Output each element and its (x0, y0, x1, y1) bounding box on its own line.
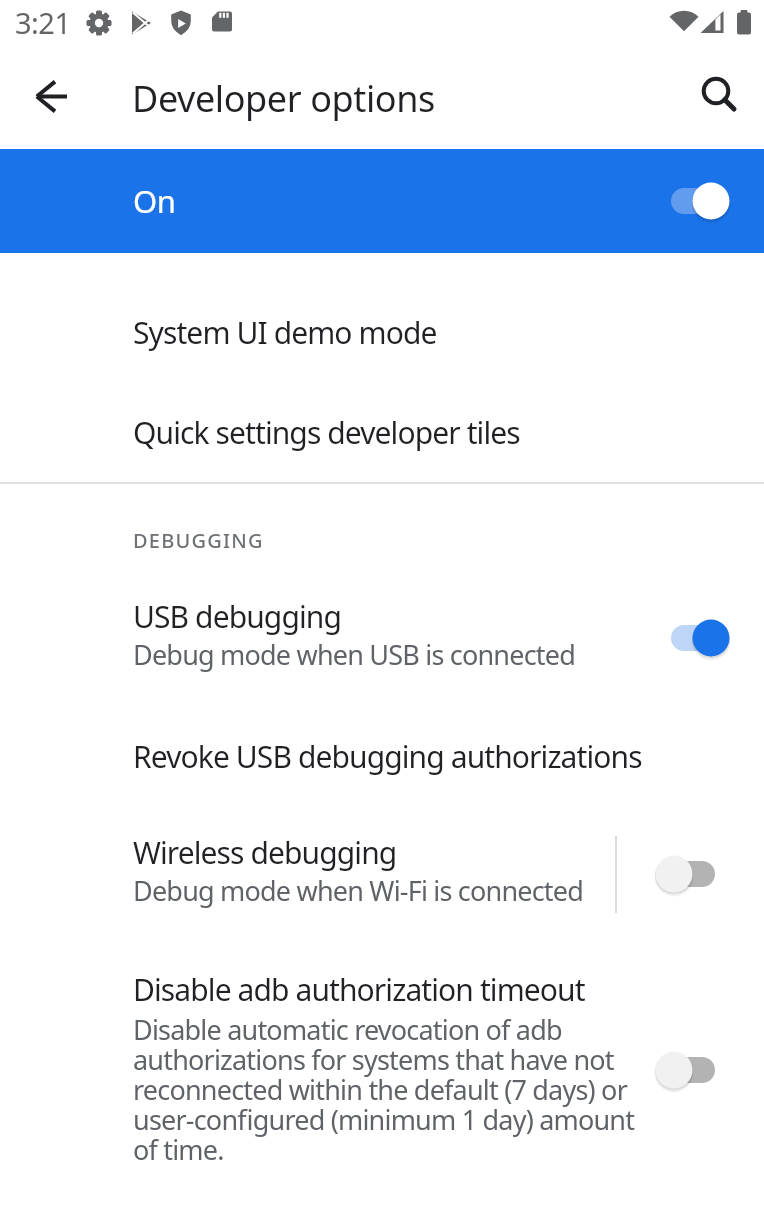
button[interactable] (32, 76, 72, 116)
button[interactable]: USB debugging (0, 578, 764, 698)
button[interactable]: On (0, 149, 764, 253)
staticText: Disable adb authorization timeout (133, 969, 585, 1009)
staticText: 3:21 (15, 3, 71, 42)
staticText: DEBUGGING (133, 527, 264, 554)
staticText: Debug mode when Wi-Fi is connected (133, 872, 584, 908)
staticText: USB debugging (133, 596, 341, 636)
button[interactable] (655, 619, 730, 657)
staticText: Quick settings developer tiles (133, 412, 520, 453)
staticText: Debug mode when USB is connected (133, 636, 576, 672)
button[interactable] (698, 71, 738, 111)
button[interactable]: Quick settings developer tiles (0, 382, 764, 482)
staticText: Developer options (132, 74, 435, 123)
button[interactable] (655, 1051, 730, 1089)
staticText: Revoke USB debugging authorizations (133, 736, 642, 777)
staticText: Disable automatic revocation of adb auth… (133, 1011, 635, 1166)
staticText: System UI demo mode (133, 312, 437, 353)
button[interactable]: Wireless debugging (0, 814, 764, 934)
button[interactable] (655, 855, 730, 893)
staticText: Wireless debugging (133, 832, 397, 872)
button[interactable]: Disable adb authorization timeout (0, 971, 764, 1168)
staticText: On (133, 180, 176, 222)
button[interactable]: System UI demo mode (0, 282, 764, 382)
button[interactable] (655, 182, 730, 220)
button[interactable]: Revoke USB debugging authorizations (0, 706, 764, 806)
